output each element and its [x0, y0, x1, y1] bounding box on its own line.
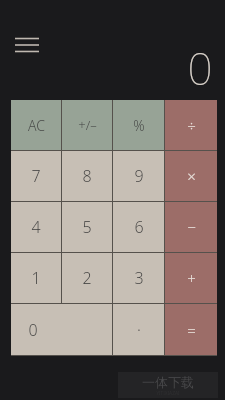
- button[interactable]: 3: [113, 253, 164, 303]
- staticText: −: [187, 217, 196, 237]
- staticText: ·: [137, 319, 141, 341]
- button[interactable]: 2: [62, 253, 112, 303]
- button[interactable]: ÷: [165, 100, 217, 150]
- staticText: 5: [82, 216, 92, 238]
- button[interactable]: 9: [113, 151, 164, 201]
- staticText: 3: [134, 267, 144, 289]
- button[interactable]: AC: [11, 100, 61, 150]
- staticText: 1: [31, 267, 41, 289]
- button[interactable]: Menu: [9, 30, 45, 60]
- staticText: 0: [28, 319, 38, 341]
- button[interactable]: −: [165, 202, 217, 252]
- staticText: 7: [31, 165, 41, 187]
- button[interactable]: 7: [11, 151, 61, 201]
- staticText: 6: [134, 216, 144, 238]
- button[interactable]: 0: [11, 304, 112, 355]
- staticText: 2: [82, 267, 92, 289]
- button[interactable]: 8: [62, 151, 112, 201]
- button[interactable]: 5: [62, 202, 112, 252]
- staticText: 0: [187, 38, 213, 98]
- button[interactable]: =: [165, 304, 217, 355]
- button[interactable]: +/–: [62, 100, 112, 150]
- staticText: +/–: [78, 116, 97, 134]
- staticText: %: [133, 116, 145, 135]
- button[interactable]: ×: [165, 151, 217, 201]
- staticText: ×: [187, 166, 196, 186]
- staticText: 一体下载: [142, 374, 194, 390]
- button[interactable]: +: [165, 253, 217, 303]
- staticText: 9: [134, 165, 144, 187]
- staticText: 8: [82, 165, 92, 187]
- staticText: =: [187, 320, 196, 340]
- staticText: ÷: [187, 115, 196, 135]
- button[interactable]: 6: [113, 202, 164, 252]
- button[interactable]: 4: [11, 202, 61, 252]
- staticText: 4: [31, 216, 41, 238]
- button[interactable]: %: [113, 100, 164, 150]
- staticText: AC: [28, 116, 45, 135]
- button[interactable]: 1: [11, 253, 61, 303]
- staticText: +: [187, 268, 196, 288]
